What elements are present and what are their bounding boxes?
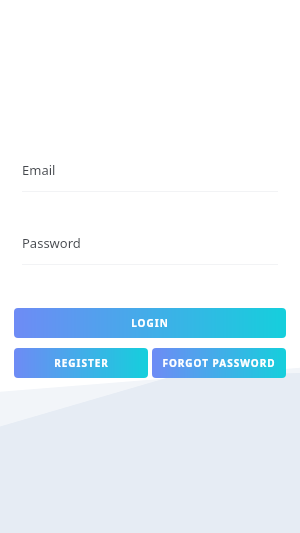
staticText: FORGOT PASSWORD xyxy=(162,356,276,370)
button[interactable]: REGISTER xyxy=(14,348,148,378)
button[interactable]: Password xyxy=(22,228,278,258)
staticText: LOGIN xyxy=(131,316,169,330)
button[interactable]: Email xyxy=(22,155,278,185)
staticText: Email xyxy=(22,161,56,179)
button[interactable]: FORGOT PASSWORD xyxy=(152,348,286,378)
staticText: REGISTER xyxy=(54,356,109,370)
button[interactable]: LOGIN xyxy=(14,308,286,338)
staticText: Password xyxy=(22,234,81,252)
